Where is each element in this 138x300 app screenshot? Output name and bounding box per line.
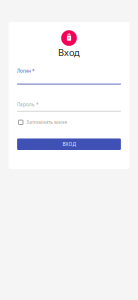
staticText: Пароль * — [17, 101, 39, 108]
staticText: Логин * — [17, 68, 35, 74]
staticText: ВХОД — [62, 141, 75, 147]
staticText: Запомнить меня — [26, 119, 67, 125]
staticText: Вход — [58, 46, 80, 58]
button[interactable]: Запомнить меня — [17, 119, 121, 125]
button[interactable]: ВХОД — [17, 138, 121, 150]
